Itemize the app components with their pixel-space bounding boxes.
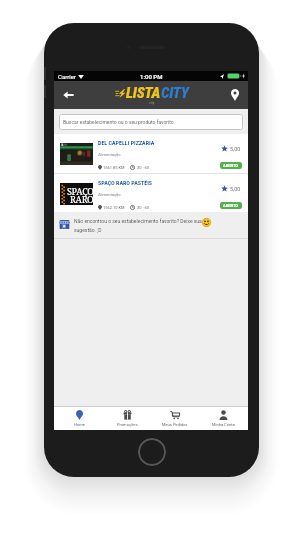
staticText: 30 - 60: [137, 205, 150, 210]
staticText: RARO: [70, 193, 94, 205]
staticText: Alimentação: [98, 152, 121, 157]
staticText: Home: [74, 422, 85, 427]
button[interactable]: Minha Conta: [200, 407, 246, 430]
staticText: Alimentação: [98, 192, 121, 197]
staticText: Carrier: [58, 73, 76, 80]
staticText: Buscar estabelecimento ou o seu produto …: [63, 119, 174, 125]
button[interactable]: Promoções: [104, 407, 150, 430]
button[interactable]: Meus Pedidos: [152, 407, 198, 430]
staticText: DEL CAPELLI PIZZARIA: [98, 139, 155, 146]
staticText: 30 - 60: [137, 165, 150, 170]
button[interactable]: ABERTO: [220, 202, 242, 209]
button[interactable]: SPAÇO: [54, 174, 248, 212]
staticText: sugestão. ;D: [74, 227, 102, 233]
staticText: 1561.85 KM: [103, 165, 125, 170]
staticText: LISTA: [126, 84, 161, 102]
staticText: Não encontrou o seu estabelecimento favo…: [74, 218, 202, 224]
staticText: city: [149, 101, 155, 105]
button[interactable]: Location: [222, 81, 248, 109]
staticText: Minha Conta: [212, 422, 235, 427]
button[interactable]: Não encontrou o seu estabelecimento favo…: [54, 212, 248, 238]
staticText: SPAÇO: [67, 185, 94, 197]
button[interactable]: Back: [54, 81, 82, 109]
staticText: ABERTO: [223, 203, 239, 208]
staticText: Promoções: [117, 422, 138, 427]
staticText: ABERTO: [223, 163, 239, 168]
button[interactable]: Home: [56, 407, 102, 430]
staticText: CITY: [161, 84, 189, 102]
staticText: 5,00: [230, 186, 241, 192]
staticText: Meus Pedidos: [162, 422, 188, 427]
button[interactable]: ABERTO: [220, 162, 242, 169]
staticText: 1562.10 KM: [103, 205, 125, 210]
button[interactable]: DEL CAPELLI PIZZARIA: [54, 134, 248, 173]
button[interactable]: Buscar estabelecimento ou o seu produto …: [59, 114, 243, 130]
staticText: 1:00 PM: [140, 73, 163, 80]
staticText: SPAÇO RARO PASTÉIS: [98, 179, 153, 186]
staticText: 5,00: [230, 146, 241, 152]
